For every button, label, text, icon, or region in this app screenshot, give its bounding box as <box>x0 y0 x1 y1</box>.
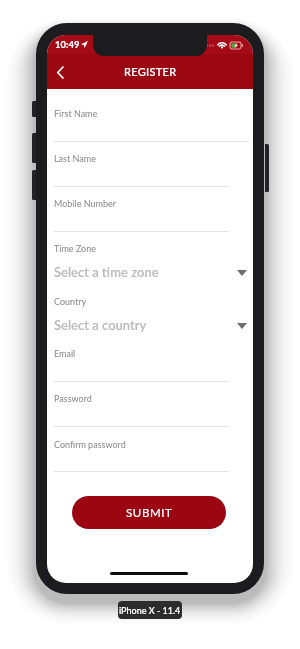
staticText: Confirm password <box>54 439 126 450</box>
staticText: Email <box>54 348 76 359</box>
button[interactable]: First Name <box>54 100 249 143</box>
staticText: Last Name <box>54 153 96 164</box>
staticText: Mobile Number <box>54 198 116 209</box>
staticText: Select a time zone <box>54 264 159 280</box>
staticText: Time Zone <box>54 243 96 254</box>
button[interactable]: Time Zone <box>54 235 246 279</box>
button[interactable]: Email <box>54 340 229 383</box>
staticText: REGISTER <box>124 65 177 78</box>
button[interactable]: Country <box>54 288 246 332</box>
staticText: Password <box>54 393 92 404</box>
button[interactable]: Mobile Number <box>54 190 229 233</box>
staticText: Country <box>54 296 87 307</box>
button[interactable]: Last Name <box>54 145 229 188</box>
button[interactable]: Confirm password <box>54 431 229 473</box>
staticText: 10:49 <box>55 39 80 50</box>
button[interactable]: SUBMIT <box>72 496 226 529</box>
button[interactable]: Back <box>47 59 73 85</box>
staticText: SUBMIT <box>126 506 173 520</box>
staticText: Select a country <box>54 317 147 333</box>
staticText: First Name <box>54 108 98 119</box>
staticText: iPhone X - 11.4 <box>119 605 181 616</box>
button[interactable]: Password <box>54 385 229 428</box>
